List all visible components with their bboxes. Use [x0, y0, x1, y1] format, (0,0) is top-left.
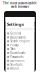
button[interactable]: Search engine: [5, 39, 34, 43]
button[interactable]: Shortcuts: [5, 63, 34, 67]
staticText: Search engine: [10, 39, 30, 43]
staticText: web browser: [11, 5, 29, 8]
staticText: Shortcuts: [10, 63, 22, 66]
staticText: Appearance: [10, 36, 26, 39]
staticText: Settings: [7, 22, 24, 27]
button[interactable]: Extensions: [5, 59, 34, 63]
button[interactable]: General: [5, 31, 34, 35]
staticText: Extensions: [10, 59, 24, 62]
staticText: Tabs: [10, 47, 15, 51]
button[interactable]: Privacy: [5, 43, 34, 47]
button[interactable]: Tabs: [5, 47, 34, 51]
button[interactable]: About: [5, 67, 34, 70]
button[interactable]: Passwords: [5, 55, 34, 59]
staticText: Privacy: [10, 43, 18, 47]
button[interactable]: Appearance: [5, 35, 34, 39]
staticText: Downloads: [10, 51, 25, 55]
button[interactable]: Downloads: [5, 51, 34, 55]
staticText: Passwords: [10, 55, 23, 59]
staticText: About: [10, 67, 19, 70]
button[interactable]: [5, 28, 34, 30]
staticText: General: [10, 32, 21, 35]
staticText: The most customizable: [3, 1, 37, 5]
